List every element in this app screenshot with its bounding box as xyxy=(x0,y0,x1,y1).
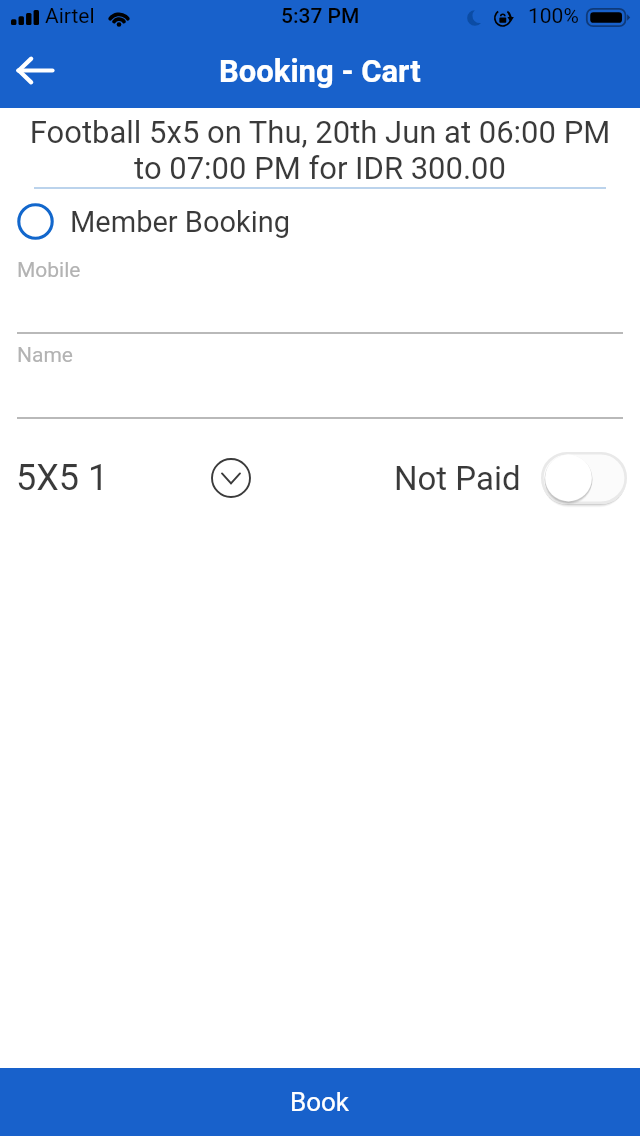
staticText: Name xyxy=(17,343,73,368)
staticText: 5X5 1 xyxy=(16,457,109,499)
staticText: Football 5x5 on Thu, 20th Jun at 06:00 P… xyxy=(0,114,640,187)
staticText: Not Paid xyxy=(394,459,521,498)
button[interactable]: Member Booking xyxy=(0,189,640,248)
button[interactable]: Name xyxy=(0,334,640,419)
button[interactable]: Mobile xyxy=(0,248,640,334)
button[interactable]: Paid toggle xyxy=(541,452,627,504)
staticText: Booking - Cart xyxy=(219,53,421,89)
staticText: Book xyxy=(290,1087,350,1117)
button[interactable]: Expand quantity xyxy=(207,454,255,502)
staticText: Airtel xyxy=(45,4,95,29)
staticText: Member Booking xyxy=(70,205,291,239)
staticText: 5:37 PM xyxy=(281,4,360,29)
button[interactable]: Back xyxy=(8,43,62,97)
staticText: 100% xyxy=(528,4,579,29)
button[interactable]: Book xyxy=(0,1068,640,1136)
staticText: Mobile xyxy=(17,258,81,283)
